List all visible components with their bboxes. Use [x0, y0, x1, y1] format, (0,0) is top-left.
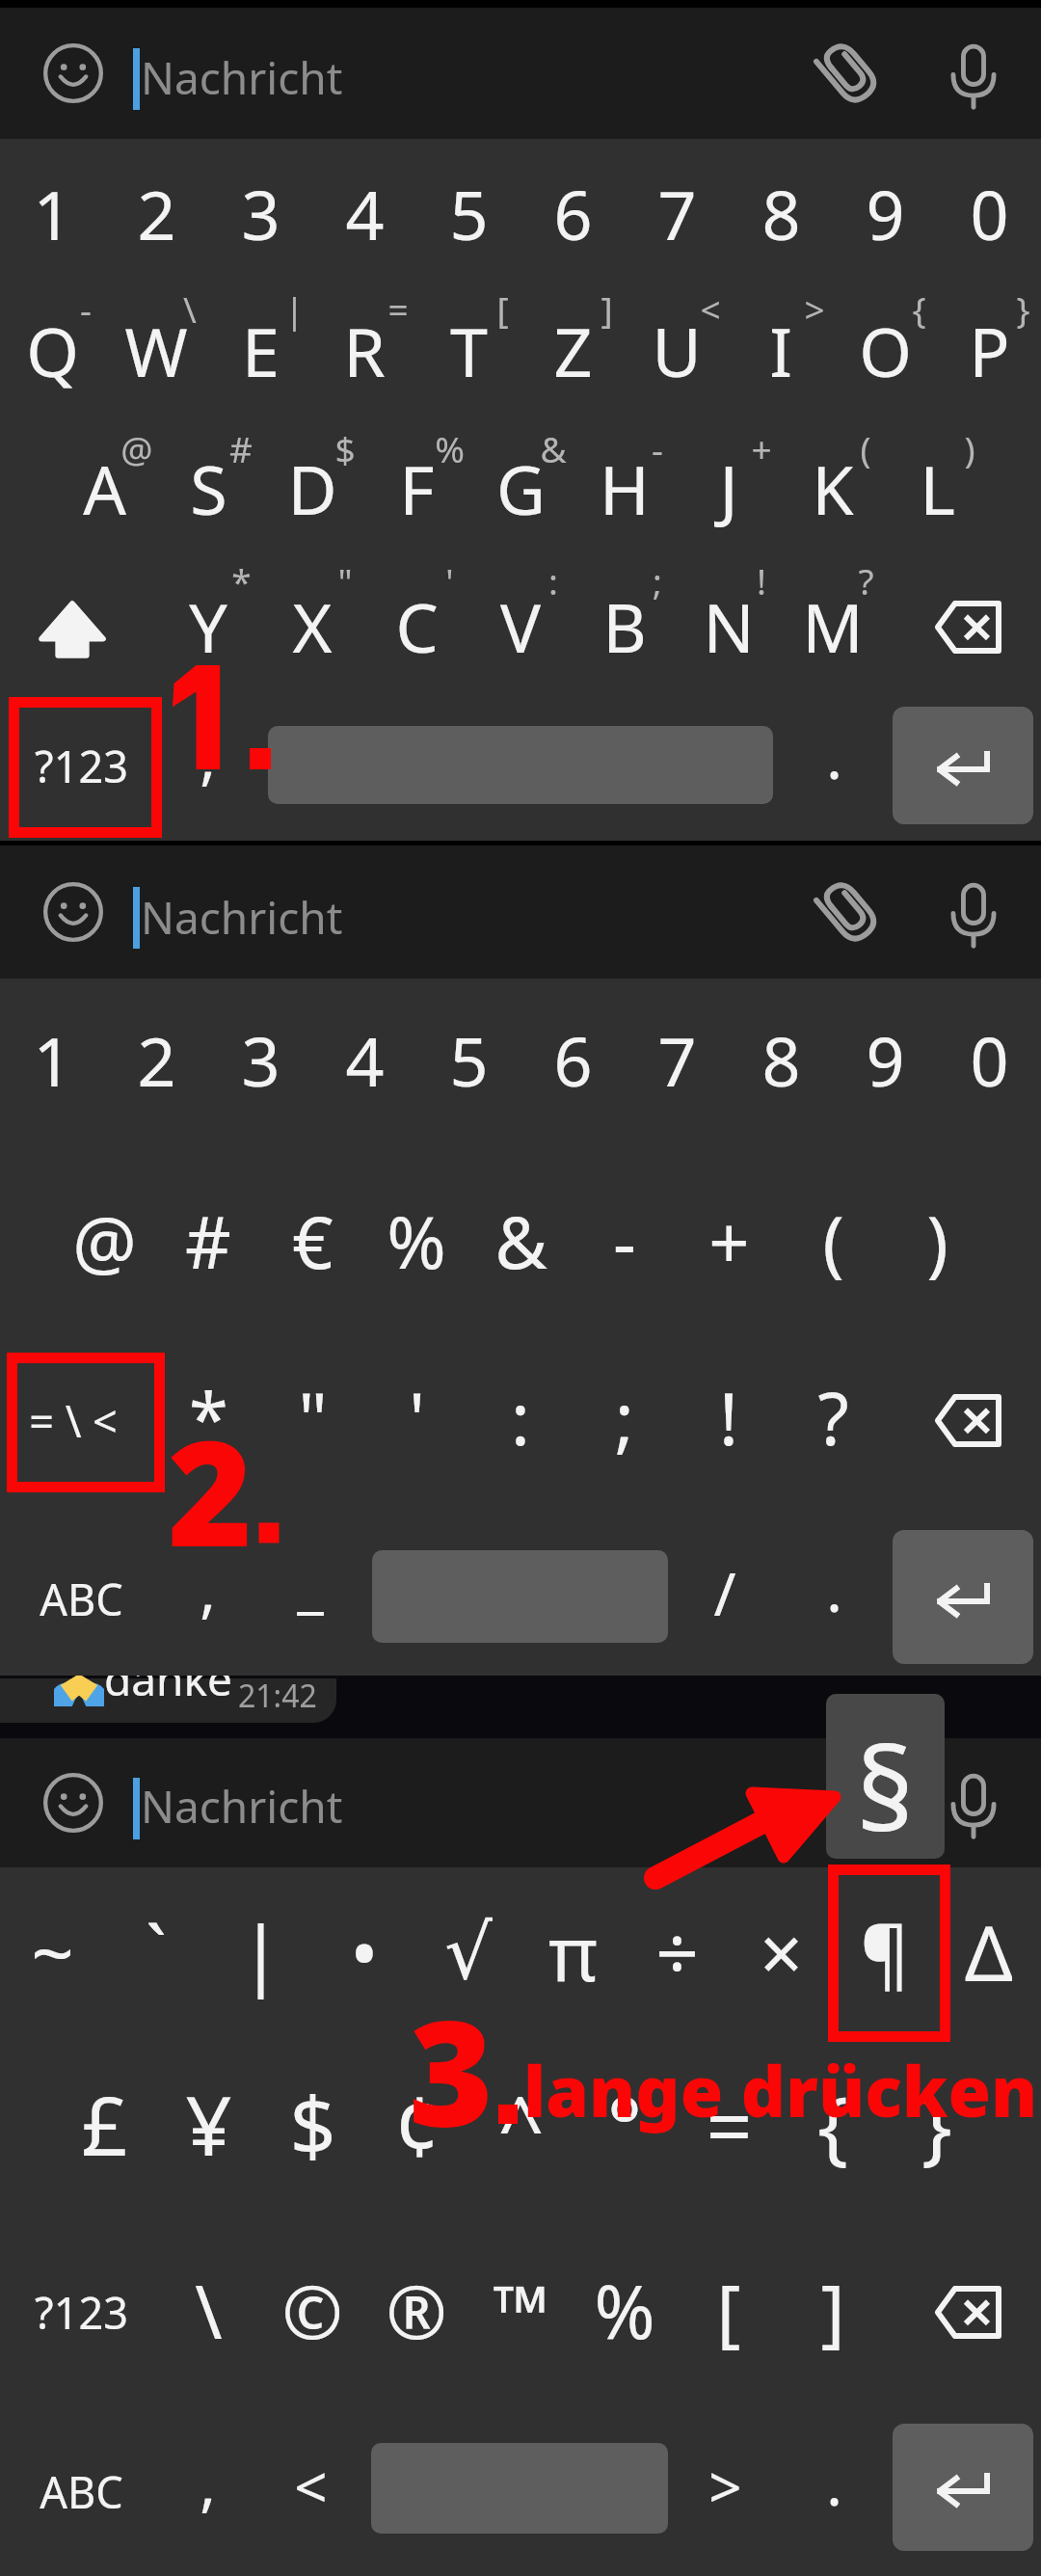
- button[interactable]: [573, 561, 677, 696]
- button[interactable]: [312, 285, 416, 420]
- button[interactable]: [520, 1887, 625, 2022]
- button[interactable]: Enter: [893, 707, 1033, 824]
- button[interactable]: [0, 995, 104, 1130]
- button[interactable]: Shift: [12, 569, 133, 690]
- button[interactable]: [781, 2053, 885, 2188]
- button[interactable]: [782, 698, 886, 833]
- button[interactable]: [677, 2053, 781, 2188]
- button[interactable]: ?123: [4, 697, 158, 834]
- button[interactable]: [937, 148, 1041, 283]
- button[interactable]: Space: [371, 2443, 668, 2534]
- button[interactable]: [673, 1531, 777, 1666]
- button[interactable]: [258, 1531, 362, 1666]
- button[interactable]: [104, 148, 208, 283]
- button[interactable]: Enter: [893, 2424, 1033, 2551]
- button[interactable]: [520, 995, 625, 1130]
- button[interactable]: [781, 1350, 885, 1485]
- button[interactable]: [364, 2244, 468, 2379]
- button[interactable]: [364, 1350, 468, 1485]
- button[interactable]: [416, 285, 520, 420]
- button[interactable]: [52, 423, 156, 558]
- button[interactable]: [573, 2244, 677, 2379]
- button[interactable]: [781, 423, 885, 558]
- button[interactable]: [937, 285, 1041, 420]
- button[interactable]: [52, 1176, 156, 1311]
- button[interactable]: [260, 423, 364, 558]
- button[interactable]: [625, 1887, 729, 2022]
- button[interactable]: [104, 1887, 208, 2022]
- button[interactable]: [52, 2053, 156, 2188]
- button[interactable]: Voice message: [927, 1757, 1020, 1849]
- button[interactable]: [312, 1887, 416, 2022]
- button[interactable]: Voice message: [927, 27, 1020, 120]
- button[interactable]: [156, 1350, 260, 1485]
- button[interactable]: [468, 2244, 573, 2379]
- button[interactable]: [260, 2053, 364, 2188]
- button[interactable]: [833, 148, 937, 283]
- button[interactable]: [156, 2244, 260, 2379]
- button[interactable]: [364, 2053, 468, 2188]
- button[interactable]: [782, 2424, 886, 2559]
- button[interactable]: [885, 2053, 989, 2188]
- button[interactable]: [468, 423, 573, 558]
- button[interactable]: Backspace: [905, 2249, 1030, 2375]
- button[interactable]: [156, 2053, 260, 2188]
- button[interactable]: [625, 995, 729, 1130]
- button[interactable]: [416, 148, 520, 283]
- button[interactable]: [312, 995, 416, 1130]
- button[interactable]: [729, 148, 833, 283]
- button[interactable]: [260, 1176, 364, 1311]
- button[interactable]: [885, 1176, 989, 1311]
- button[interactable]: [468, 561, 573, 696]
- button[interactable]: [0, 1887, 104, 2022]
- button[interactable]: [833, 995, 937, 1130]
- button[interactable]: [258, 2424, 362, 2559]
- button[interactable]: [208, 285, 312, 420]
- button[interactable]: ABC: [4, 1530, 158, 1667]
- button[interactable]: Emoji: [27, 866, 120, 958]
- button[interactable]: [155, 698, 259, 833]
- button[interactable]: ?123: [4, 2243, 158, 2380]
- button[interactable]: [937, 995, 1041, 1130]
- button[interactable]: Attach file: [802, 27, 894, 120]
- button[interactable]: Section sign key: [826, 1694, 945, 1859]
- button[interactable]: Space: [372, 1550, 668, 1643]
- button[interactable]: [833, 285, 937, 420]
- button[interactable]: [364, 561, 468, 696]
- button[interactable]: [416, 1887, 520, 2022]
- button[interactable]: Backspace: [905, 1357, 1030, 1483]
- button[interactable]: [520, 285, 625, 420]
- button[interactable]: [104, 285, 208, 420]
- button[interactable]: [729, 995, 833, 1130]
- button[interactable]: [208, 148, 312, 283]
- button[interactable]: [677, 2244, 781, 2379]
- button[interactable]: [416, 995, 520, 1130]
- button[interactable]: [573, 2053, 677, 2188]
- button[interactable]: [260, 1350, 364, 1485]
- button[interactable]: [104, 995, 208, 1130]
- button[interactable]: [520, 148, 625, 283]
- button[interactable]: [625, 148, 729, 283]
- button[interactable]: Space: [268, 726, 773, 804]
- button[interactable]: [156, 423, 260, 558]
- button[interactable]: [468, 2053, 573, 2188]
- button[interactable]: [673, 2424, 777, 2559]
- button[interactable]: Emoji: [27, 27, 120, 120]
- button[interactable]: [573, 1176, 677, 1311]
- button[interactable]: = \ <: [0, 1352, 150, 1489]
- button[interactable]: [573, 423, 677, 558]
- button[interactable]: [729, 285, 833, 420]
- button[interactable]: [782, 1531, 886, 1666]
- button[interactable]: Voice message: [927, 866, 1020, 958]
- button[interactable]: [155, 1531, 259, 1666]
- button[interactable]: [677, 1176, 781, 1311]
- button[interactable]: [625, 285, 729, 420]
- button[interactable]: Attach file: [802, 866, 894, 958]
- button[interactable]: [312, 148, 416, 283]
- button[interactable]: [677, 1350, 781, 1485]
- button[interactable]: Emoji: [27, 1757, 120, 1849]
- button[interactable]: [208, 1887, 312, 2022]
- button[interactable]: [156, 1176, 260, 1311]
- button[interactable]: [0, 148, 104, 283]
- button[interactable]: [208, 995, 312, 1130]
